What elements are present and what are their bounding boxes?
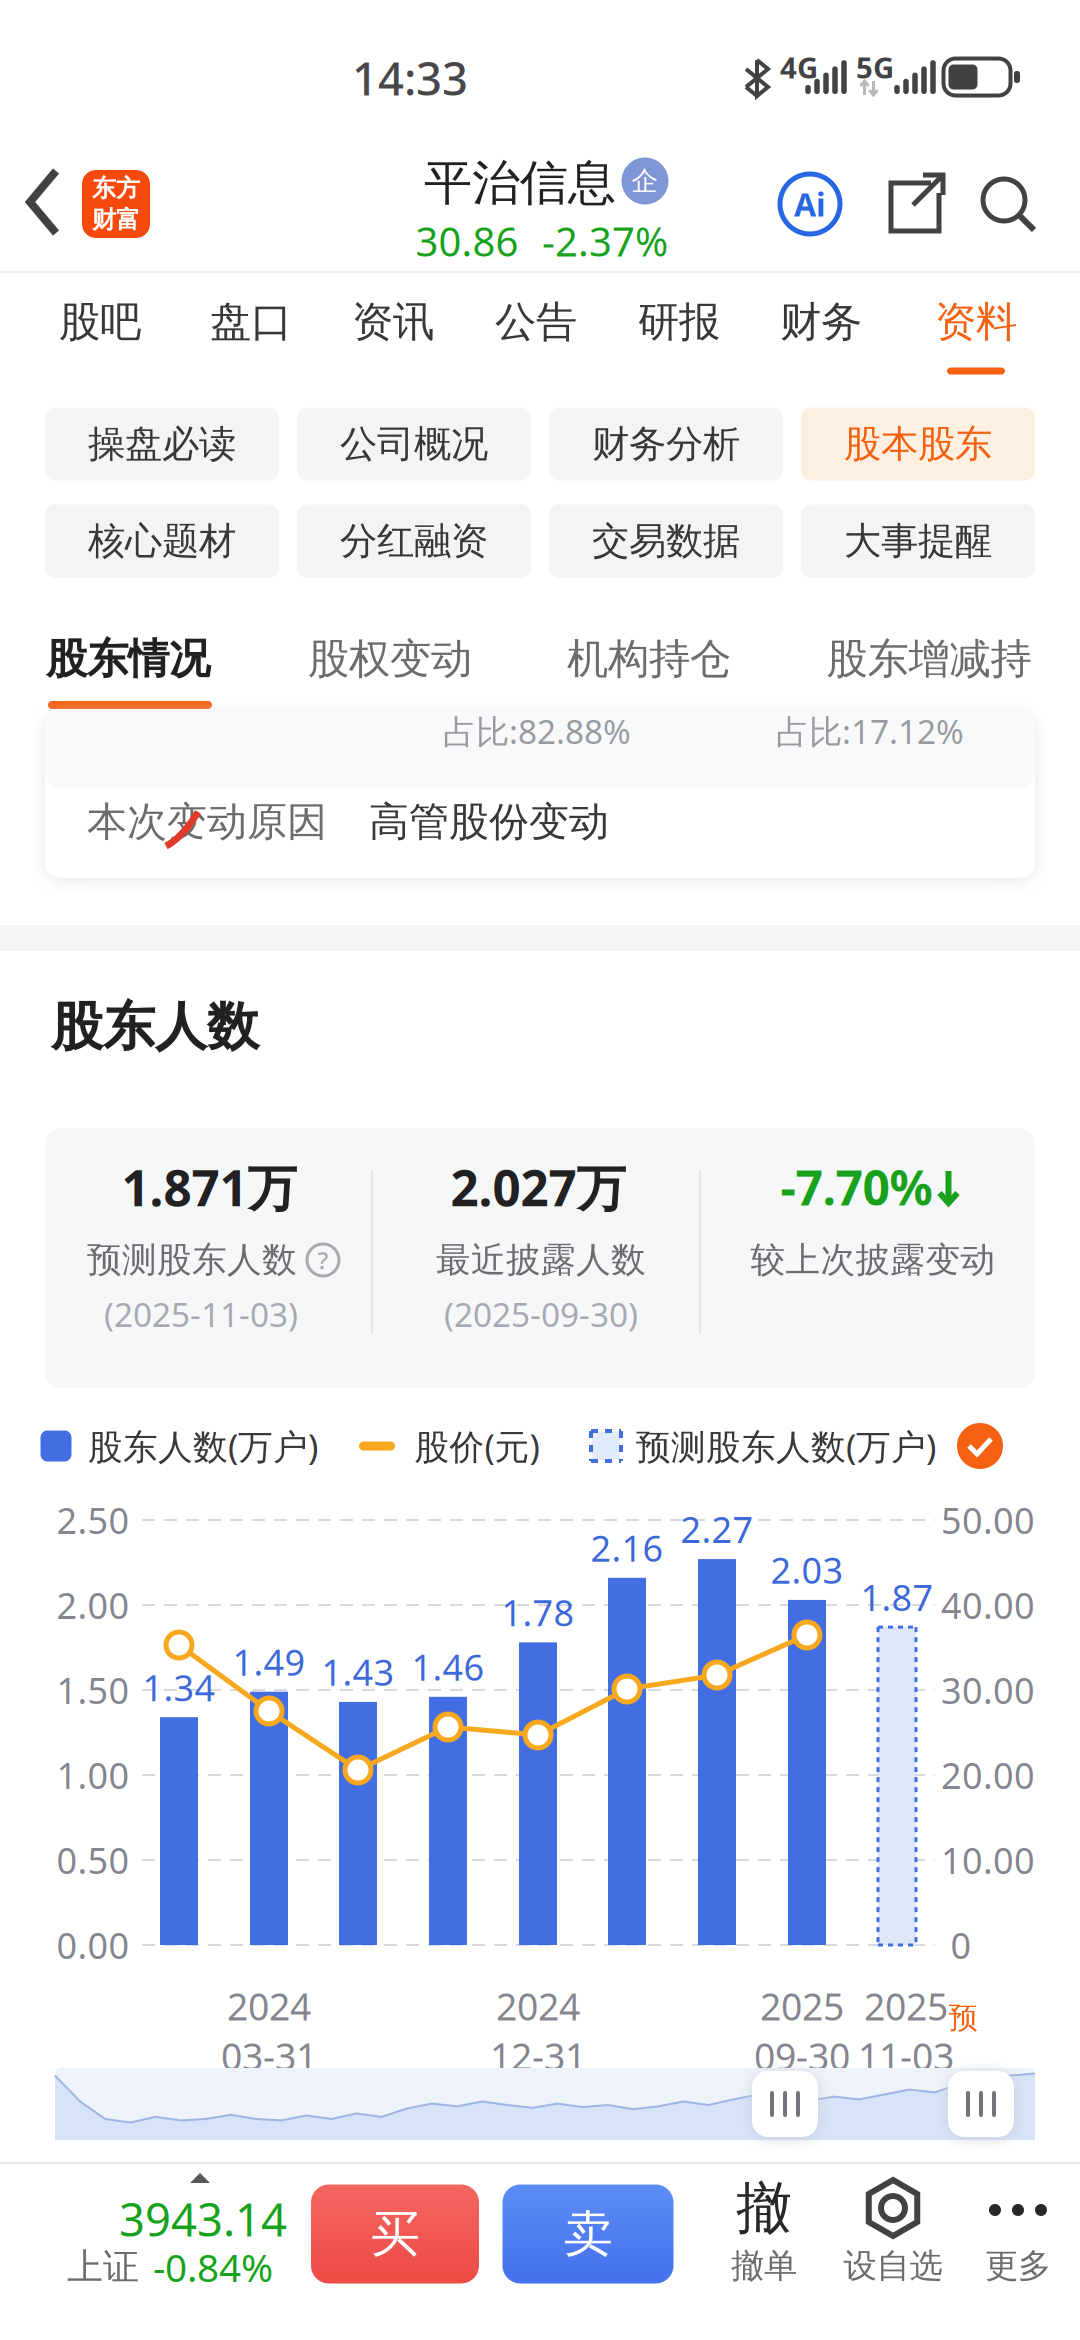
staticText: 公告 bbox=[495, 297, 577, 347]
staticText: 2024 bbox=[496, 1981, 580, 2031]
button[interactable]: 设自选 bbox=[823, 2158, 963, 2298]
button[interactable]: 分享 bbox=[887, 175, 945, 233]
button[interactable]: 大事提醒 bbox=[801, 504, 1035, 577]
staticText: 2.00 bbox=[56, 1581, 129, 1629]
button[interactable]: 拖动选择范围 bbox=[948, 2071, 1014, 2137]
staticText: 0.50 bbox=[56, 1836, 129, 1884]
staticText: 09-30 bbox=[754, 2031, 850, 2081]
button[interactable]: 股吧 bbox=[34, 278, 166, 366]
staticText: -2.37% bbox=[542, 214, 668, 267]
staticText: 预 bbox=[948, 2000, 977, 2036]
button[interactable]: 公司概况 bbox=[297, 407, 531, 480]
staticText: 大事提醒 bbox=[844, 518, 992, 564]
button[interactable]: 撤 bbox=[704, 2158, 824, 2298]
button[interactable]: 股权变动 bbox=[285, 619, 495, 699]
staticText: 操盘必读 bbox=[88, 421, 236, 467]
staticText: 40.00 bbox=[941, 1581, 1035, 1629]
staticText: 财务分析 bbox=[592, 421, 740, 467]
staticText: 2025 bbox=[760, 1981, 844, 2031]
staticText: 本次变动原因 bbox=[87, 797, 327, 846]
button[interactable]: 股本股东 bbox=[801, 407, 1035, 480]
staticText: 企 bbox=[631, 165, 658, 197]
button[interactable]: 交易数据 bbox=[549, 504, 783, 577]
staticText: 30.86 bbox=[415, 214, 518, 267]
staticText: 占比:17.12% bbox=[776, 709, 964, 753]
button[interactable]: 研报 bbox=[613, 278, 745, 366]
staticText: 核心题材 bbox=[88, 518, 236, 564]
staticText: 股东人数 bbox=[51, 995, 259, 1059]
staticText: 较上次披露变动 bbox=[750, 1239, 995, 1281]
staticText: 3943.14 bbox=[119, 2189, 287, 2249]
staticText: 占比:82.88% bbox=[443, 709, 631, 753]
staticText: 5G bbox=[856, 47, 894, 86]
staticText: 东方 bbox=[92, 173, 140, 203]
staticText: 2024 bbox=[227, 1981, 311, 2031]
staticText: 14:33 bbox=[352, 48, 468, 108]
button[interactable]: 已选中 bbox=[957, 1423, 1003, 1469]
staticText: 2.50 bbox=[56, 1496, 129, 1544]
button[interactable]: 股东增减持 bbox=[804, 619, 1054, 699]
staticText: 30.00 bbox=[941, 1666, 1035, 1714]
staticText: 财富 bbox=[92, 205, 140, 234]
staticText: (2025-09-30) bbox=[444, 1292, 638, 1336]
staticText: 1.34 bbox=[142, 1663, 215, 1711]
staticText: 股吧 bbox=[59, 297, 141, 347]
button[interactable]: 机构持仓 bbox=[544, 619, 754, 699]
staticText: 研报 bbox=[638, 297, 720, 347]
button[interactable]: 帮助 bbox=[307, 1244, 339, 1276]
staticText: 2025 bbox=[864, 1981, 948, 2031]
staticText: 1.00 bbox=[56, 1751, 129, 1799]
staticText: 1.49 bbox=[232, 1638, 305, 1686]
button[interactable]: 公告 bbox=[470, 278, 602, 366]
staticText: Ai bbox=[794, 183, 826, 225]
button[interactable]: 卖 bbox=[502, 2184, 673, 2283]
staticText: 2.27 bbox=[680, 1505, 753, 1553]
staticText: 更多 bbox=[985, 2245, 1051, 2286]
staticText: 财务 bbox=[780, 297, 862, 347]
button[interactable]: 盘口 bbox=[185, 278, 317, 366]
button[interactable]: 财务 bbox=[755, 278, 887, 366]
staticText: 设自选 bbox=[843, 2245, 942, 2286]
staticText: 1.50 bbox=[56, 1666, 129, 1714]
button[interactable]: 股东情况 bbox=[23, 619, 233, 699]
button[interactable]: 搜索 bbox=[980, 176, 1036, 232]
button[interactable]: 买 bbox=[311, 2184, 479, 2283]
button[interactable]: 更多 bbox=[958, 2158, 1078, 2298]
staticText: -0.84% bbox=[153, 2241, 273, 2293]
staticText: 平治信息 bbox=[424, 153, 616, 212]
staticText: 盘口 bbox=[210, 297, 292, 347]
button[interactable]: 资料 bbox=[910, 278, 1042, 366]
staticText: 卖 bbox=[563, 2204, 612, 2264]
staticText: 1.78 bbox=[501, 1588, 574, 1636]
staticText: 0.00 bbox=[56, 1921, 129, 1969]
staticText: 高管股份变动 bbox=[369, 797, 609, 846]
staticText: 20.00 bbox=[941, 1751, 1035, 1799]
staticText: 50.00 bbox=[941, 1496, 1035, 1544]
staticText: 资讯 bbox=[352, 297, 434, 347]
staticText: 2.027万 bbox=[450, 1154, 625, 1220]
button[interactable]: 3943.14 bbox=[0, 2167, 300, 2307]
staticText: 分红融资 bbox=[340, 518, 488, 564]
staticText: 03-31 bbox=[221, 2031, 317, 2081]
button[interactable]: 核心题材 bbox=[45, 504, 279, 577]
staticText: 公司概况 bbox=[340, 421, 488, 467]
button[interactable]: 东方财富 bbox=[82, 170, 150, 238]
staticText: 预测股东人数 bbox=[87, 1239, 297, 1281]
staticText: 撤单 bbox=[731, 2245, 797, 2286]
staticText: 股价(元) bbox=[414, 1423, 539, 1469]
staticText: 股本股东 bbox=[844, 421, 992, 467]
button[interactable]: 分红融资 bbox=[297, 504, 531, 577]
staticText: 2.16 bbox=[590, 1524, 663, 1572]
staticText: 撤 bbox=[736, 2174, 792, 2242]
staticText: 11-03 bbox=[858, 2031, 954, 2081]
staticText: (2025-11-03) bbox=[104, 1292, 298, 1336]
button[interactable]: 财务分析 bbox=[549, 407, 783, 480]
staticText: 1.87 bbox=[860, 1573, 933, 1621]
button[interactable]: 操盘必读 bbox=[45, 407, 279, 480]
button[interactable]: 拖动选择范围 bbox=[752, 2071, 818, 2137]
button[interactable]: Back bbox=[28, 171, 60, 235]
button[interactable]: AI 助手 bbox=[780, 174, 840, 234]
staticText: ? bbox=[317, 1244, 328, 1276]
staticText: 12-31 bbox=[490, 2031, 586, 2081]
button[interactable]: 资讯 bbox=[327, 278, 459, 366]
